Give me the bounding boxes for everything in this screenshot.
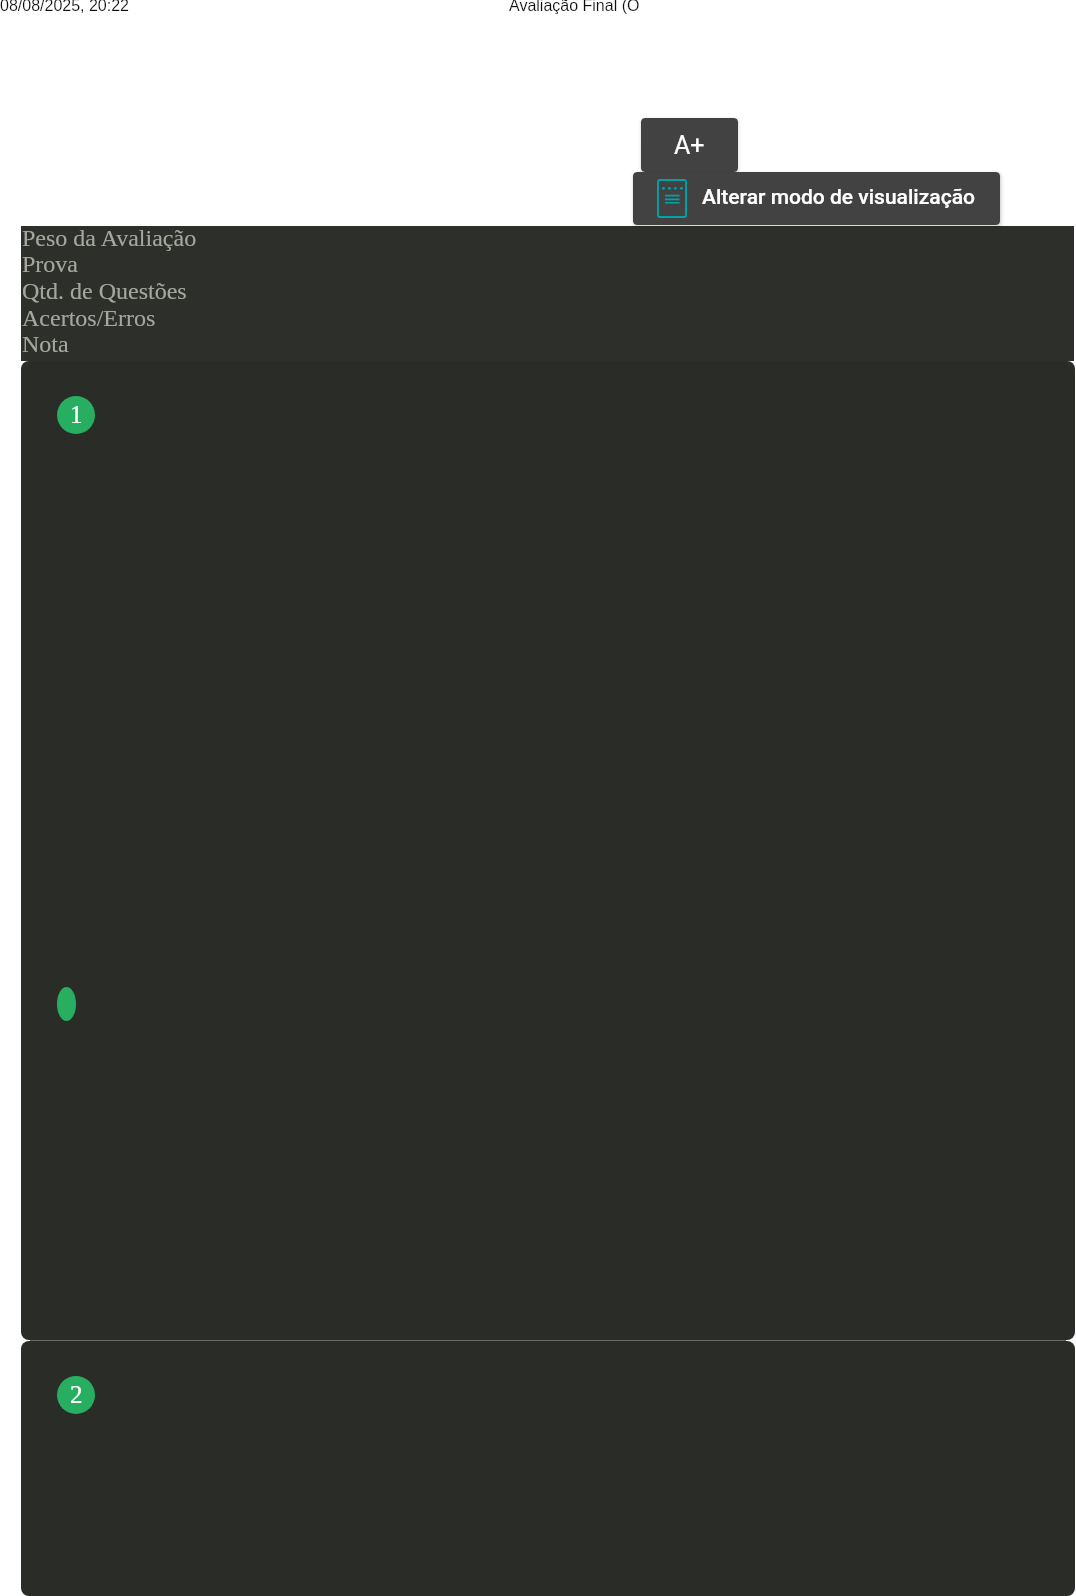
staticText: 2 [70,1381,83,1409]
staticText: Qtd. de Questões [22,278,187,305]
button[interactable]: A+ [641,118,738,172]
staticText: Alterar modo de visualização [702,185,975,210]
staticText: A+ [674,131,705,160]
staticText: Acertos/Erros [22,305,156,332]
button[interactable]: 2 [21,1341,1075,1596]
staticText: 08/08/2025, 20:22 [0,0,130,15]
button[interactable]: Alterar modo de visualização [633,172,1000,225]
staticText: Prova [22,251,78,278]
other: Alterar modo de visualização [657,179,687,218]
staticText: 1 [70,401,83,429]
staticText: Avaliação Final (O [509,0,640,15]
staticText: Nota [22,331,69,358]
staticText: Peso da Avaliação [22,225,197,252]
button[interactable]: 1 [21,361,1075,1340]
